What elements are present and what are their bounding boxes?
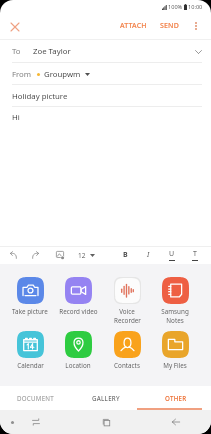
staticText: Notes <box>166 316 184 325</box>
button[interactable]: 12 <box>75 246 98 264</box>
staticText: Record video <box>59 307 98 316</box>
button[interactable]: Take picture <box>6 277 54 316</box>
button[interactable]: T <box>187 246 203 264</box>
staticText: Groupwm <box>44 69 81 80</box>
staticText: My Files <box>163 361 187 370</box>
button[interactable]: Samsung <box>151 277 199 325</box>
button[interactable]: U <box>164 246 180 264</box>
button[interactable]: Record video <box>54 277 102 316</box>
button[interactable]: OTHER <box>141 386 211 410</box>
button[interactable]: DOCUMENT <box>0 386 71 410</box>
staticText: 100% <box>168 3 183 11</box>
staticText: ATTACH <box>120 21 147 31</box>
button[interactable]: SEND <box>156 14 183 38</box>
staticText: Take picture <box>12 307 48 316</box>
staticText: Zoe Taylor <box>33 46 71 57</box>
staticText: Voice <box>119 307 135 316</box>
button[interactable]: Voice <box>103 277 151 325</box>
button[interactable]: More options <box>187 14 205 38</box>
staticText: GALLERY <box>92 394 120 402</box>
button[interactable]: Location <box>54 331 102 370</box>
button[interactable]: My Files <box>151 331 199 370</box>
button[interactable]: ATTACH <box>116 14 151 38</box>
staticText: 12 <box>78 251 86 260</box>
button[interactable]: Home <box>71 410 141 434</box>
staticText: From <box>12 69 32 80</box>
button[interactable]: Back <box>141 410 211 434</box>
button[interactable]: Redo <box>28 246 44 264</box>
button[interactable]: B <box>117 246 133 264</box>
staticText: 10:00 <box>188 3 203 11</box>
button[interactable]: Calendar <box>6 331 54 370</box>
staticText: Recorder <box>114 316 141 325</box>
staticText: T <box>193 249 197 259</box>
staticText: Calendar <box>17 361 44 370</box>
staticText: Contacts <box>114 361 140 370</box>
staticText: U <box>169 249 175 259</box>
staticText: B <box>123 250 128 260</box>
staticText: OTHER <box>165 394 187 402</box>
staticText: Location <box>65 361 91 370</box>
button[interactable]: Insert image <box>52 246 68 264</box>
staticText: Samsung <box>161 307 189 316</box>
staticText: SEND <box>160 21 179 31</box>
button[interactable]: Undo <box>5 246 21 264</box>
staticText: I <box>147 250 150 260</box>
button[interactable]: Groupwm <box>44 69 90 80</box>
button[interactable]: Expand recipients <box>192 46 204 58</box>
button[interactable]: GALLERY <box>71 386 141 410</box>
staticText: DOCUMENT <box>17 394 54 402</box>
button[interactable]: Close <box>5 17 24 36</box>
button[interactable]: I <box>140 246 156 264</box>
staticText: Holiday picture <box>12 91 68 102</box>
button[interactable]: Recents <box>0 410 71 434</box>
staticText: Hi <box>12 112 20 123</box>
staticText: To <box>12 46 21 57</box>
button[interactable]: Contacts <box>103 331 151 370</box>
